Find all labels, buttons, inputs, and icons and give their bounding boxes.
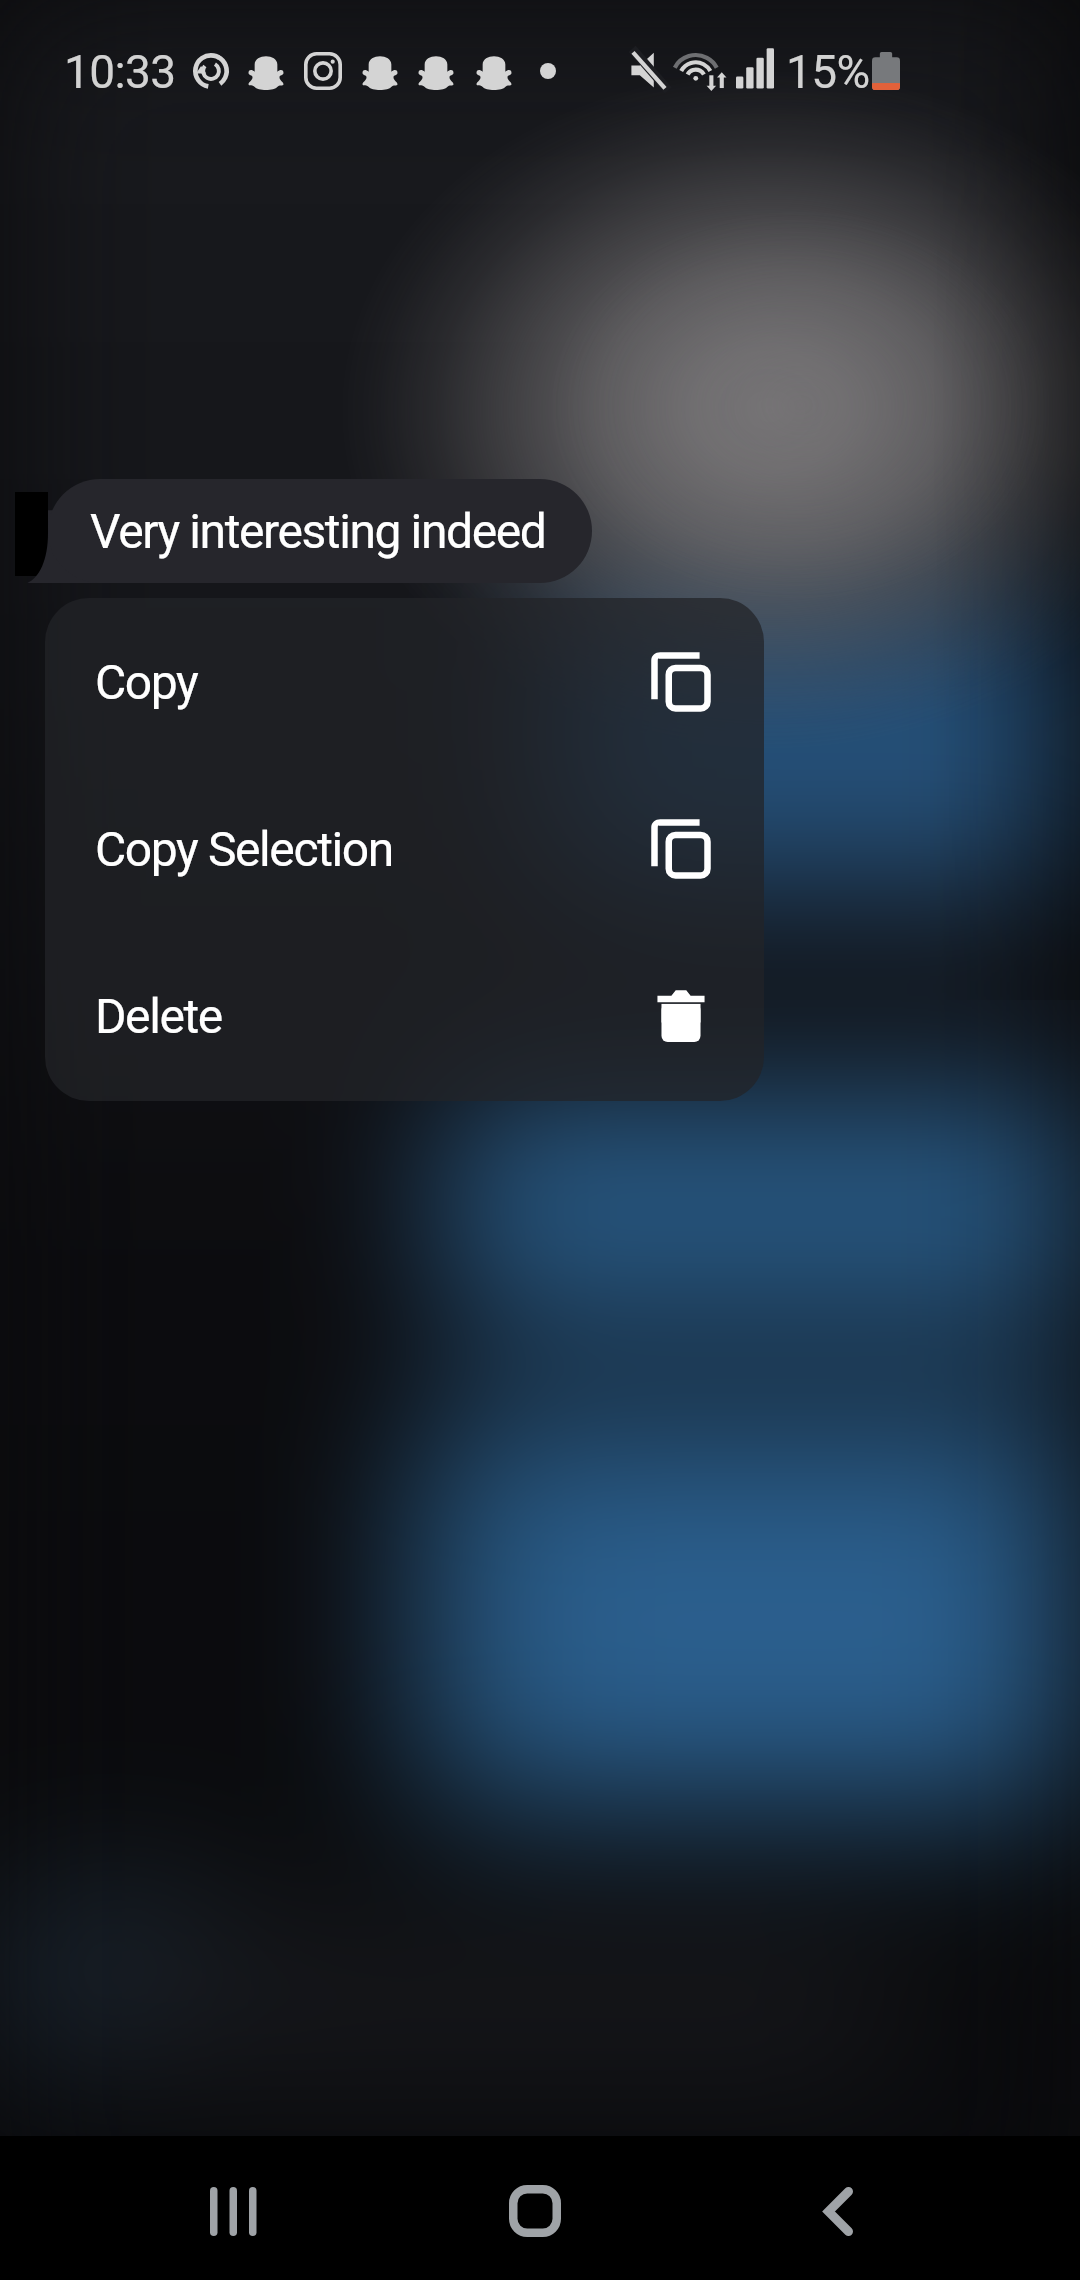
staticText: Copy Selection xyxy=(95,821,393,877)
staticText: Copy xyxy=(95,654,198,710)
button[interactable]: Home xyxy=(465,2141,605,2280)
button[interactable]: Copy xyxy=(45,598,764,765)
button[interactable]: Very interesting indeed xyxy=(48,479,592,583)
staticText: 10:33 xyxy=(64,45,176,99)
button[interactable]: Copy Selection xyxy=(45,765,764,932)
button[interactable]: Back xyxy=(768,2141,908,2280)
button[interactable]: Recent apps xyxy=(163,2141,303,2280)
button[interactable]: Delete xyxy=(45,932,764,1099)
staticText: Very interesting indeed xyxy=(90,503,546,559)
staticText: Delete xyxy=(95,988,222,1044)
staticText: 15% xyxy=(786,45,870,99)
